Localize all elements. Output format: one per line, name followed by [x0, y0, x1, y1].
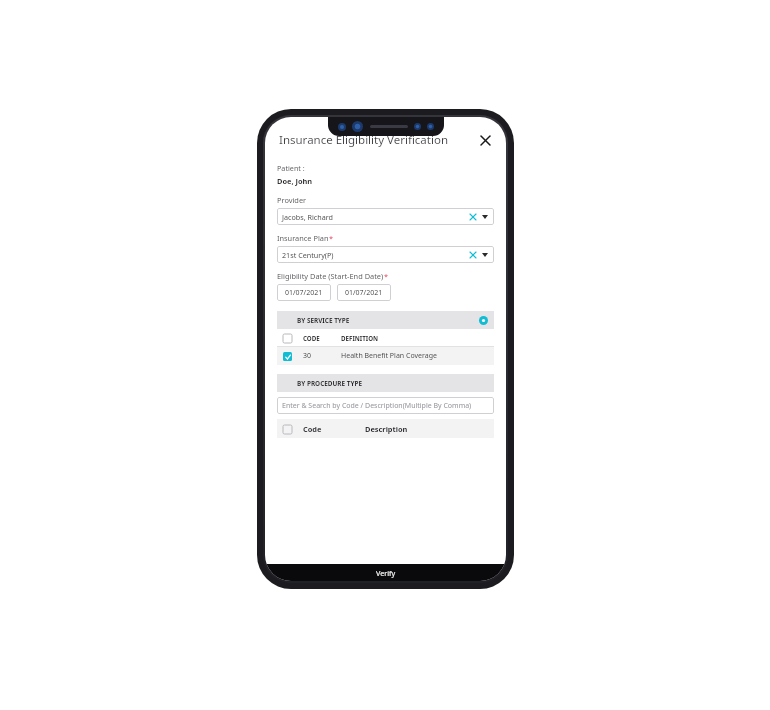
staticText: 30 — [303, 351, 341, 361]
staticText: Insurance Eligibility Verification — [279, 132, 474, 148]
button[interactable]: Checked — [280, 349, 294, 363]
button[interactable]: Clear — [468, 212, 478, 222]
staticText: Provider — [277, 195, 307, 205]
button[interactable]: Open dropdown — [480, 250, 490, 260]
button[interactable]: Enter & Search by Code / Description(Mul… — [277, 397, 494, 414]
button[interactable]: 01/07/2021 — [337, 284, 391, 301]
staticText: Code — [303, 424, 365, 434]
button[interactable]: Open dropdown — [480, 212, 490, 222]
button[interactable]: Clear — [468, 250, 478, 260]
staticText: * — [329, 233, 334, 243]
staticText: Doe, John — [277, 176, 313, 186]
button[interactable]: BY PROCEDURE TYPE — [277, 374, 494, 392]
button[interactable]: BY SERVICE TYPE — [277, 311, 494, 329]
staticText: 21st Century(P) — [282, 250, 468, 260]
staticText: Enter & Search by Code / Description(Mul… — [282, 401, 472, 411]
staticText: 01/07/2021 — [345, 288, 383, 298]
button[interactable]: 21st Century(P) — [277, 246, 494, 263]
staticText: BY SERVICE TYPE — [297, 316, 350, 325]
button[interactable]: Verify — [265, 564, 506, 581]
button[interactable]: Jacobs, Richard — [277, 208, 494, 225]
staticText: Patient : — [277, 163, 305, 173]
button[interactable]: Unchecked — [280, 422, 294, 436]
staticText: CODE — [303, 334, 341, 342]
staticText: * — [384, 271, 389, 281]
staticText: Insurance Plan — [277, 233, 329, 243]
staticText: Description — [365, 424, 408, 434]
staticText: Verify — [376, 568, 396, 578]
staticText: Jacobs, Richard — [282, 212, 468, 222]
button[interactable]: Checked — [277, 347, 494, 365]
staticText: 01/07/2021 — [285, 288, 323, 298]
button[interactable]: Unchecked — [280, 331, 294, 345]
staticText: Eligibility Date (Start-End Date) — [277, 271, 384, 281]
staticText: DEFINITION — [341, 334, 379, 342]
button[interactable]: Close — [474, 129, 496, 151]
staticText: Health Benefit Plan Coverage — [341, 351, 437, 361]
staticText: BY PROCEDURE TYPE — [297, 379, 362, 388]
button[interactable]: Information — [477, 314, 489, 326]
button[interactable]: 01/07/2021 — [277, 284, 331, 301]
